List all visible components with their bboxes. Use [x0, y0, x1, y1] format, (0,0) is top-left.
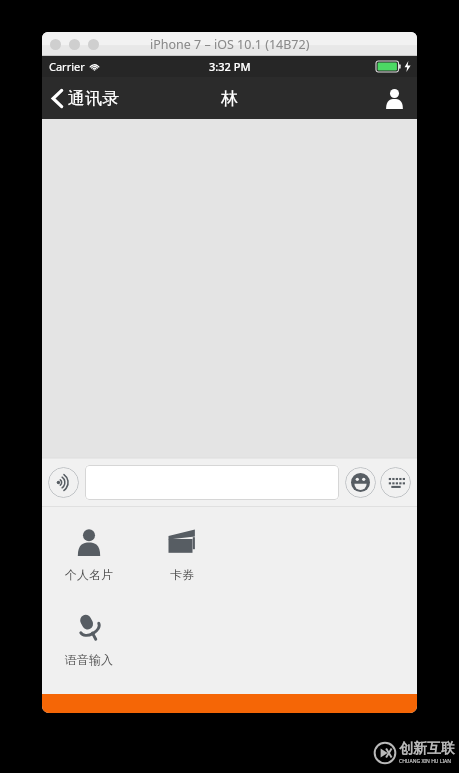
button[interactable]: Emoji — [345, 467, 376, 498]
button[interactable]: 通讯录 — [42, 82, 129, 115]
button[interactable]: Window button — [69, 39, 80, 50]
button[interactable]: Contact info — [384, 88, 417, 109]
button[interactable]: 语音输入 — [65, 606, 113, 671]
staticText: 卡券 — [170, 567, 194, 582]
button[interactable] — [85, 465, 339, 500]
button[interactable]: Voice message — [48, 467, 79, 498]
staticText: 个人名片 — [65, 567, 113, 582]
staticText: iPhone 7 – iOS 10.1 (14B72) — [150, 36, 310, 53]
staticText: 林 — [221, 88, 238, 109]
staticText: 创新互联 — [399, 740, 455, 758]
button[interactable]: Window button — [50, 39, 61, 50]
staticText: CHUANG XIN HU LIAN — [399, 758, 452, 765]
button[interactable]: Keyboard — [380, 467, 411, 498]
button[interactable]: 卡券 — [167, 521, 197, 586]
staticText: 3:32 PM — [209, 59, 251, 74]
staticText: 语音输入 — [65, 652, 113, 667]
staticText: 通讯录 — [68, 88, 119, 109]
button[interactable]: 个人名片 — [65, 521, 113, 586]
button[interactable]: Window button — [88, 39, 99, 50]
staticText: Carrier — [49, 59, 85, 74]
